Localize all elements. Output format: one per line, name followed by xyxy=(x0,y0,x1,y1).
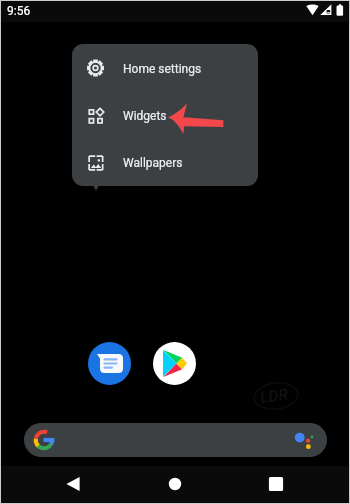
staticText: 9:56 xyxy=(7,4,31,18)
button[interactable]: Home xyxy=(156,465,194,503)
button[interactable]: Wallpapers xyxy=(72,138,258,185)
button[interactable]: Back xyxy=(54,465,92,503)
staticText: Widgets xyxy=(123,109,167,123)
button[interactable]: Widgets xyxy=(72,91,258,138)
staticText: Wallpapers xyxy=(123,156,183,170)
staticText: LDR xyxy=(259,384,290,407)
button[interactable]: Search xyxy=(24,423,327,457)
staticText: Home settings xyxy=(123,62,202,76)
button[interactable]: Home settings xyxy=(72,44,258,91)
button[interactable]: Play Store xyxy=(153,342,196,385)
button[interactable]: Messages xyxy=(88,342,131,385)
button[interactable]: Recents xyxy=(257,465,295,503)
